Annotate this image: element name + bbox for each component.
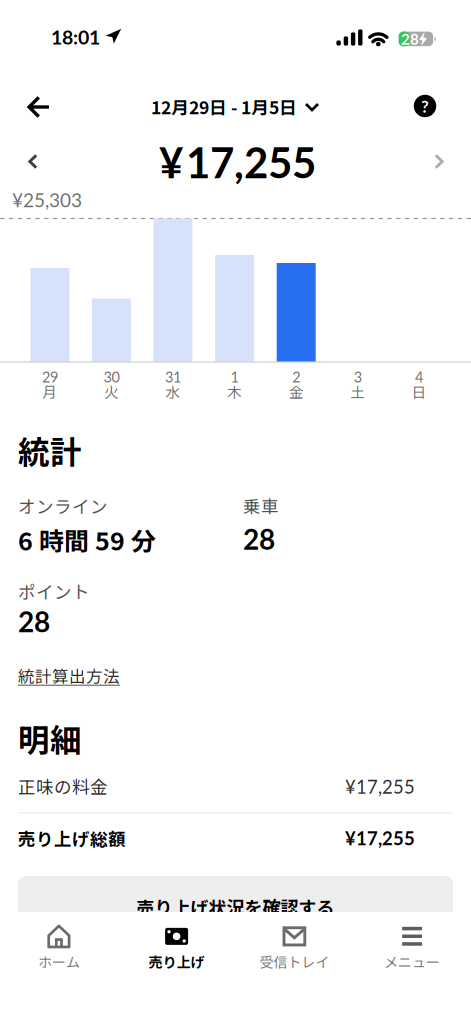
button[interactable]: Next week: [423, 145, 455, 177]
staticText: 3: [354, 368, 362, 386]
staticText: 木: [227, 381, 242, 402]
staticText: 売り上げ状況を確認する: [136, 894, 334, 920]
button[interactable]: 31水: [153, 218, 192, 362]
staticText: 明細: [18, 715, 82, 761]
staticText: 12月29日 - 1月5日: [151, 94, 297, 119]
staticText: 28: [18, 605, 50, 638]
button[interactable]: 2金: [277, 263, 316, 362]
button[interactable]: 売り上げ: [118, 917, 235, 979]
staticText: 30: [103, 368, 119, 386]
staticText: 売り上げ総額: [18, 825, 126, 851]
staticText: 29: [42, 368, 58, 386]
staticText: オンライン: [18, 493, 108, 518]
staticText: 18:01: [51, 25, 100, 49]
staticText: 日: [411, 381, 426, 402]
staticText: 乗車: [243, 493, 279, 518]
button[interactable]: 統計算出方法: [18, 663, 120, 687]
staticText: 31: [165, 368, 181, 386]
staticText: ¥17,255: [345, 827, 415, 849]
staticText: ホーム: [38, 951, 80, 972]
staticText: 土: [350, 381, 365, 402]
staticText: 火: [104, 381, 119, 402]
staticText: ポイント: [18, 578, 90, 604]
staticText: 28: [401, 30, 419, 48]
staticText: 正味の料金: [18, 773, 108, 799]
staticText: 2: [292, 368, 300, 386]
staticText: 1: [231, 368, 239, 386]
staticText: 月: [42, 381, 57, 402]
staticText: ¥25,303: [12, 189, 82, 211]
button[interactable]: ホーム: [0, 917, 117, 979]
button[interactable]: Previous week: [17, 145, 49, 177]
staticText: ?: [421, 96, 429, 116]
button[interactable]: メニュー: [354, 917, 471, 979]
button[interactable]: 売り上げ状況を確認する: [18, 876, 453, 932]
staticText: 6 時間 59 分: [18, 521, 156, 558]
staticText: 水: [165, 381, 180, 402]
button[interactable]: 12月29日 - 1月5日: [151, 94, 319, 119]
button[interactable]: Help: [414, 95, 436, 117]
staticText: 受信トレイ: [259, 951, 329, 972]
staticText: ¥ 17,255: [159, 137, 316, 187]
button[interactable]: 受信トレイ: [236, 917, 353, 979]
staticText: 統計算出方法: [18, 663, 120, 687]
staticText: 28: [243, 522, 275, 556]
button[interactable]: Back: [16, 85, 60, 129]
staticText: 金: [289, 381, 304, 402]
staticText: ¥17,255: [345, 775, 415, 798]
staticText: メニュー: [384, 951, 440, 972]
staticText: 売り上げ: [149, 951, 205, 972]
staticText: 4: [415, 368, 423, 386]
button[interactable]: 30火: [92, 298, 131, 362]
staticText: 統計: [18, 427, 82, 473]
